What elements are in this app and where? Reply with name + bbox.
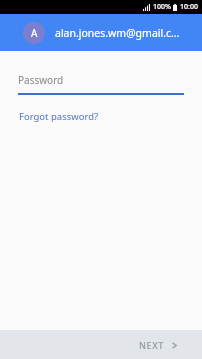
staticText: 100% [153, 2, 171, 12]
button[interactable]: NEXT [129, 334, 188, 356]
staticText: A [31, 26, 38, 40]
staticText: NEXT [139, 339, 164, 351]
staticText: alan.jones.wm@gmail.c… [55, 26, 180, 40]
staticText: Password [18, 73, 64, 87]
button[interactable]: Password [0, 73, 202, 95]
button[interactable]: Forgot password? [18, 107, 100, 126]
staticText: Forgot password? [19, 110, 99, 123]
other: Next [171, 342, 178, 349]
button[interactable]: A [0, 14, 202, 51]
staticText: 10:00 [180, 2, 198, 12]
